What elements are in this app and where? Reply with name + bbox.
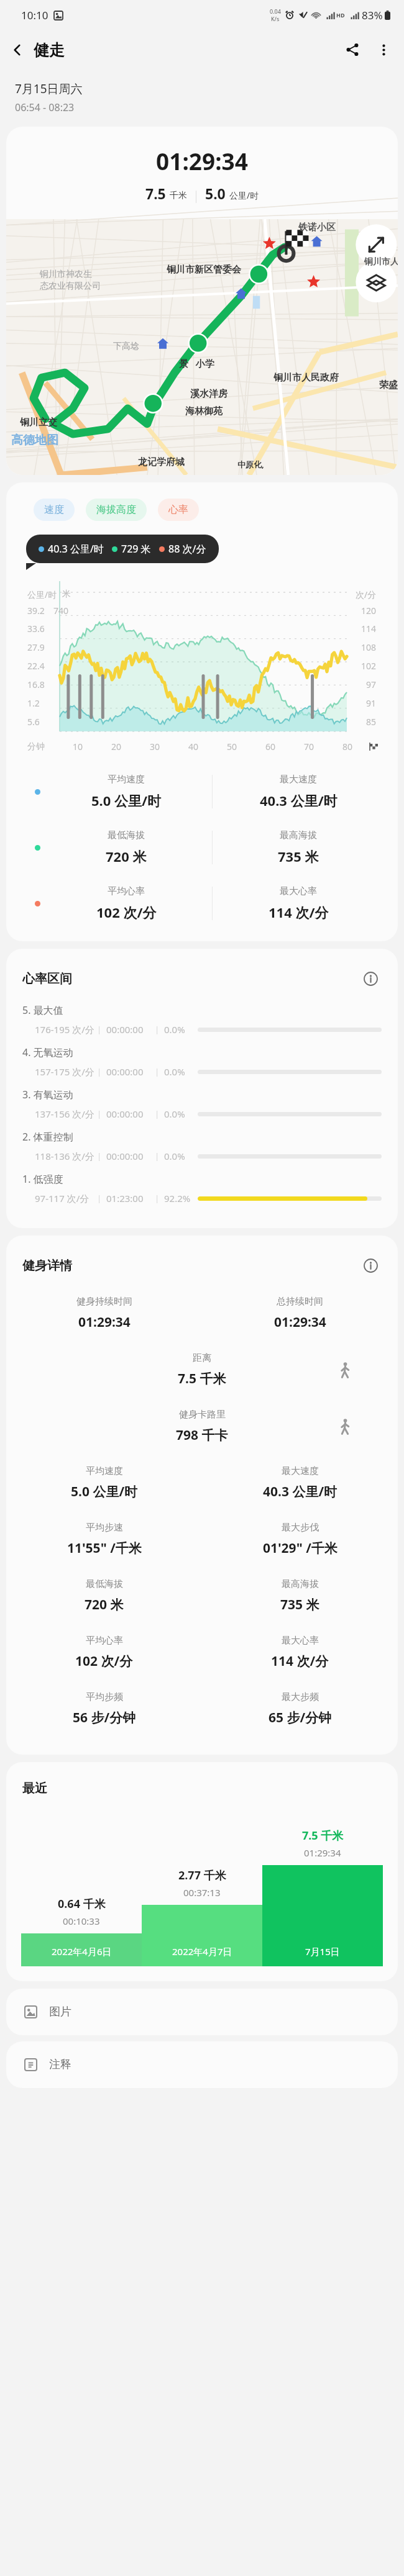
staticText: 最大心率 bbox=[282, 1635, 319, 1647]
staticText: 65 步/分钟 bbox=[269, 1709, 332, 1727]
staticText: 图片 bbox=[49, 2005, 71, 2019]
staticText: 80 bbox=[342, 741, 353, 752]
button[interactable]: More options bbox=[368, 34, 399, 65]
staticText: 1. 低强度 bbox=[22, 1172, 63, 1186]
staticText: 注释 bbox=[49, 2058, 71, 2072]
staticText: 0.0% bbox=[164, 1023, 193, 1036]
staticText: 40.3 公里/时 bbox=[48, 542, 104, 556]
staticText: 次/分 bbox=[356, 589, 377, 600]
staticText: 0.64 千米 bbox=[58, 1896, 106, 1912]
button[interactable]: Route map bbox=[6, 219, 398, 475]
staticText: 荣盛广 bbox=[379, 379, 398, 391]
staticText: 最大速度 bbox=[282, 1465, 319, 1477]
staticText: 平均心率 bbox=[108, 885, 145, 897]
staticText: 铜川市人民政府 bbox=[273, 372, 339, 384]
button[interactable]: 01:29:34 bbox=[6, 127, 398, 475]
staticText: 798 千卡 bbox=[176, 1426, 228, 1444]
staticText: 7.5 bbox=[145, 184, 166, 203]
staticText: 铁诺小区 bbox=[298, 222, 336, 233]
button[interactable]: Back bbox=[0, 33, 34, 66]
staticText: 176-195 次/分 bbox=[35, 1023, 97, 1036]
staticText: 11'55" /千米 bbox=[67, 1539, 142, 1557]
staticText: 7月15日周六 bbox=[15, 81, 83, 97]
staticText: 39.2 bbox=[27, 605, 45, 617]
staticText: 公里/时 bbox=[27, 589, 57, 600]
button[interactable]: 2.77 千米 bbox=[142, 1811, 262, 1966]
staticText: 1.2 bbox=[27, 697, 40, 709]
staticText: 心率 bbox=[168, 504, 188, 516]
button[interactable]: 0.64 千米 bbox=[21, 1811, 142, 1966]
staticText: 118-136 次/分 bbox=[35, 1150, 97, 1162]
staticText: 114 bbox=[361, 623, 377, 635]
staticText: 56 步/分钟 bbox=[73, 1709, 136, 1727]
staticText: 83% bbox=[362, 8, 383, 22]
staticText: 108 bbox=[361, 641, 377, 653]
staticText: 中原化, bbox=[237, 459, 264, 470]
button[interactable]: 海拔高度 bbox=[86, 499, 147, 521]
staticText: 7.5 千米 bbox=[302, 1828, 344, 1843]
staticText: 速度 bbox=[44, 504, 64, 516]
staticText: 2022年4月7日 bbox=[172, 1945, 232, 1958]
staticText: 铜川立交 bbox=[20, 417, 57, 428]
staticText: 距离 bbox=[193, 1352, 211, 1364]
staticText: 120 bbox=[361, 605, 377, 617]
staticText: | bbox=[97, 1024, 102, 1035]
staticText: | bbox=[155, 1066, 160, 1077]
staticText: 分钟 bbox=[27, 741, 45, 752]
staticText: 40.3 公里/时 bbox=[260, 791, 337, 810]
button[interactable]: 注释 bbox=[6, 2041, 398, 2088]
staticText: 01:29:34 bbox=[6, 145, 398, 176]
staticText: 114 次/分 bbox=[269, 903, 329, 921]
staticText: 114 次/分 bbox=[271, 1652, 329, 1670]
staticText: 16.8 bbox=[27, 679, 45, 690]
staticText: 景 小学 bbox=[179, 357, 214, 369]
staticText: 40.3 公里/时 bbox=[263, 1483, 337, 1501]
staticText: 千米 bbox=[170, 190, 187, 201]
staticText: | bbox=[97, 1193, 102, 1204]
staticText: 00:00:00 bbox=[106, 1065, 155, 1078]
staticText: 92.2% bbox=[164, 1192, 193, 1204]
staticText: 102 bbox=[361, 660, 377, 672]
staticText: 5. 最大值 bbox=[22, 1003, 63, 1017]
staticText: 01:29:34 bbox=[274, 1313, 326, 1331]
staticText: 铜川市新区管委会 bbox=[167, 264, 241, 276]
button[interactable]: Share bbox=[337, 34, 368, 65]
button[interactable]: 速度 bbox=[34, 499, 75, 521]
staticText: 平均速度 bbox=[108, 774, 145, 785]
staticText: 最高海拔 bbox=[280, 829, 317, 841]
staticText: 97-117 次/分 bbox=[35, 1192, 97, 1204]
staticText: 铜川市人民医 bbox=[364, 256, 398, 268]
staticText: 00:10:33 bbox=[63, 1915, 100, 1927]
staticText: 01:23:00 bbox=[106, 1192, 155, 1204]
staticText: 最近 bbox=[22, 1781, 47, 1796]
staticText: 4. 无氧运动 bbox=[22, 1046, 73, 1059]
button[interactable]: 心率 bbox=[158, 499, 199, 521]
staticText: | bbox=[97, 1150, 102, 1162]
staticText: 最低海拔 bbox=[108, 829, 145, 841]
staticText: 最大心率 bbox=[280, 885, 317, 897]
staticText: 30 bbox=[150, 741, 160, 752]
staticText: 720 米 bbox=[106, 847, 147, 865]
staticText: 2. 体重控制 bbox=[22, 1130, 73, 1144]
staticText: 7月15日 bbox=[305, 1945, 340, 1958]
staticText: 最高海拔 bbox=[282, 1578, 319, 1590]
staticText: 健身详情 bbox=[22, 1258, 72, 1273]
staticText: 龙记学府城 bbox=[138, 456, 185, 468]
staticText: 平均步速 bbox=[86, 1522, 123, 1534]
staticText: 公里/时 bbox=[229, 189, 259, 201]
staticText: 最大步伐 bbox=[282, 1522, 319, 1534]
staticText: 102 次/分 bbox=[75, 1652, 133, 1670]
staticText: 22.4 bbox=[27, 660, 45, 672]
staticText: | bbox=[155, 1108, 160, 1119]
staticText: 2022年4月6日 bbox=[52, 1945, 112, 1958]
staticText: 735 米 bbox=[280, 1596, 319, 1614]
staticText: 0.04 bbox=[270, 7, 281, 15]
button[interactable]: 图片 bbox=[6, 1989, 398, 2035]
button[interactable]: Info bbox=[359, 1254, 382, 1277]
staticText: 97 bbox=[366, 679, 377, 690]
staticText: 01:29:34 bbox=[304, 1846, 341, 1859]
staticText: 最大步频 bbox=[282, 1691, 319, 1703]
staticText: 下高埝 bbox=[113, 341, 139, 352]
button[interactable]: Info bbox=[359, 967, 382, 990]
button[interactable]: 7.5 千米 bbox=[262, 1811, 383, 1966]
